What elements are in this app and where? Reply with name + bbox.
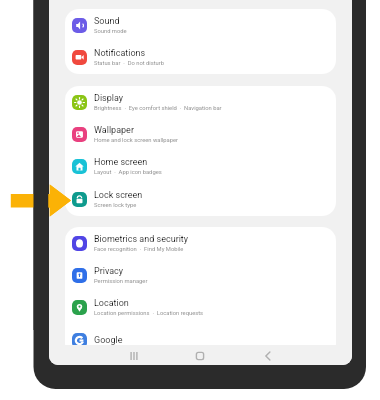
staticText: Status bar · Do not disturb — [94, 60, 165, 67]
staticText: Home screen — [94, 157, 148, 168]
button[interactable]: Lock screen — [65, 183, 336, 216]
staticText: Layout · App icon badges — [94, 169, 162, 176]
staticText: Home and lock screen wallpaper — [94, 137, 178, 144]
button[interactable]: Google — [65, 324, 336, 345]
button[interactable]: Wallpaper — [65, 118, 336, 150]
staticText: Notifications — [94, 48, 146, 59]
staticText: Sound — [94, 16, 120, 27]
staticText: Google — [94, 335, 123, 345]
staticText: Face recognition · Find My Mobile — [94, 246, 184, 253]
button[interactable]: Notifications — [65, 41, 336, 74]
button[interactable]: Sound — [65, 9, 336, 41]
staticText: Display — [94, 93, 124, 104]
button[interactable]: Home — [190, 346, 210, 365]
button[interactable]: Display — [65, 86, 336, 118]
staticText: Permission manager — [94, 278, 148, 285]
staticText: Biometrics and security — [94, 234, 189, 245]
staticText: Screen lock type — [94, 202, 137, 209]
button[interactable]: Home screen — [65, 150, 336, 183]
staticText: Wallpaper — [94, 125, 134, 136]
button[interactable]: Back — [258, 346, 278, 365]
staticText: Privacy — [94, 266, 124, 277]
button[interactable]: Recents — [124, 346, 144, 365]
button[interactable]: Privacy — [65, 259, 336, 291]
staticText: Brightness · Eye comfort shield · Naviga… — [94, 105, 222, 112]
staticText: Sound mode — [94, 28, 127, 35]
button[interactable]: Biometrics and security — [65, 227, 336, 259]
button[interactable]: Location — [65, 291, 336, 324]
staticText: Location permissions · Location requests — [94, 310, 204, 317]
staticText: Location — [94, 298, 129, 309]
staticText: Lock screen — [94, 190, 143, 201]
